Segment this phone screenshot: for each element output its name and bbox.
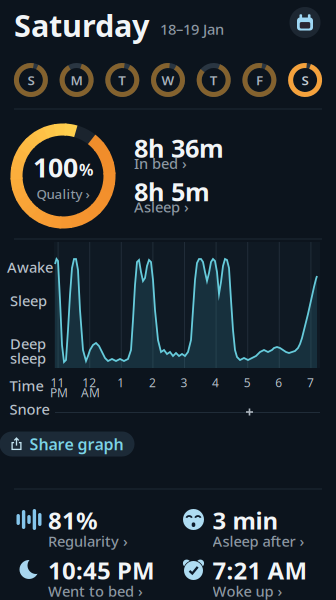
staticText: 4: [212, 374, 219, 390]
staticText: 10:45 PM: [48, 554, 155, 586]
button[interactable]: 100: [10, 123, 115, 228]
staticText: 7: [307, 374, 314, 390]
staticText: 8h 36m: [134, 131, 224, 165]
staticText: 2: [149, 374, 156, 390]
staticText: Deep: [10, 334, 46, 353]
staticText: 1: [117, 374, 124, 390]
staticText: 5: [244, 374, 251, 390]
staticText: 3: [180, 374, 187, 390]
button[interactable]: M: [60, 63, 94, 97]
button[interactable]: W: [151, 63, 185, 97]
staticText: 100: [33, 149, 78, 185]
button[interactable]: 8h 5m: [134, 174, 210, 217]
staticText: In bed ›: [134, 154, 187, 173]
staticText: 7:21 AM: [212, 554, 307, 586]
staticText: 11: [51, 374, 65, 390]
staticText: Asleep after ›: [212, 531, 304, 551]
staticText: Sleep: [10, 291, 47, 310]
staticText: PM: [50, 384, 68, 400]
staticText: %: [79, 159, 93, 180]
staticText: 6: [275, 374, 282, 390]
staticText: Time: [9, 376, 43, 395]
staticText: Regularity ›: [48, 531, 128, 551]
staticText: T: [210, 71, 218, 89]
staticText: 12: [82, 374, 96, 390]
button[interactable]: F: [242, 63, 276, 97]
button[interactable]: 10:45 PM: [17, 554, 171, 600]
staticText: Share graph: [29, 433, 123, 455]
button[interactable]: 3 min: [181, 504, 335, 551]
staticText: M: [71, 71, 83, 89]
staticText: AM: [81, 384, 100, 400]
staticText: W: [161, 71, 174, 89]
button[interactable]: Calendar: [287, 4, 323, 40]
staticText: Asleep ›: [134, 197, 189, 217]
staticText: 18–19 Jan: [160, 19, 224, 39]
staticText: T: [118, 71, 126, 89]
button[interactable]: 8h 36m: [134, 131, 224, 173]
staticText: 3 min: [212, 504, 278, 536]
button[interactable]: Share graph: [0, 431, 134, 456]
staticText: Snore: [9, 399, 49, 419]
staticText: sleep: [10, 348, 46, 368]
button[interactable]: S: [288, 63, 322, 97]
staticText: Went to bed ›: [48, 581, 143, 600]
staticText: Woke up ›: [212, 581, 282, 600]
staticText: Quality ›: [36, 185, 89, 203]
button[interactable]: 7:21 AM: [181, 554, 335, 600]
staticText: Saturday: [14, 5, 150, 45]
staticText: 8h 5m: [134, 174, 210, 208]
staticText: S: [27, 71, 34, 89]
button[interactable]: T: [197, 63, 231, 97]
staticText: F: [256, 71, 263, 89]
button[interactable]: S: [14, 63, 48, 97]
staticText: 81%: [48, 504, 98, 536]
button[interactable]: T: [105, 63, 139, 97]
staticText: Awake: [7, 257, 53, 277]
button[interactable]: 81%: [17, 504, 171, 551]
staticText: S: [302, 71, 309, 89]
